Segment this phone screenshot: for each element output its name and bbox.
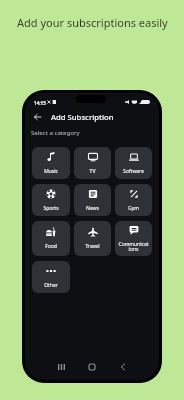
button[interactable]: Gym	[115, 184, 152, 216]
staticText: Sports	[35, 205, 67, 212]
button[interactable]: TV	[74, 147, 111, 179]
button[interactable]: Travel	[74, 221, 111, 256]
staticText: Travel	[77, 243, 108, 250]
staticText: Communications	[118, 241, 149, 252]
button[interactable]: Software	[115, 147, 152, 179]
staticText: Software	[118, 168, 149, 175]
button[interactable]: Music	[32, 147, 70, 179]
button[interactable]: Other	[32, 261, 70, 293]
staticText: Gym	[118, 205, 149, 212]
staticText: News	[77, 205, 108, 212]
button[interactable]: Communications	[115, 221, 152, 256]
button[interactable]: News	[74, 184, 111, 216]
staticText: Food	[35, 243, 67, 250]
button[interactable]: Recent apps	[54, 360, 68, 374]
staticText: Other	[35, 282, 67, 289]
staticText: Add Subscription	[51, 112, 114, 122]
staticText: 14:15	[34, 100, 46, 106]
staticText: TV	[77, 168, 108, 175]
staticText: Music	[35, 168, 67, 175]
button[interactable]: Back	[116, 360, 130, 374]
staticText: Select a category	[31, 128, 80, 136]
button[interactable]: Back	[31, 110, 44, 123]
button[interactable]: Food	[32, 221, 70, 256]
button[interactable]: Home	[85, 360, 99, 374]
staticText: Add your subscriptions easily	[17, 15, 168, 30]
button[interactable]: Sports	[32, 184, 70, 216]
